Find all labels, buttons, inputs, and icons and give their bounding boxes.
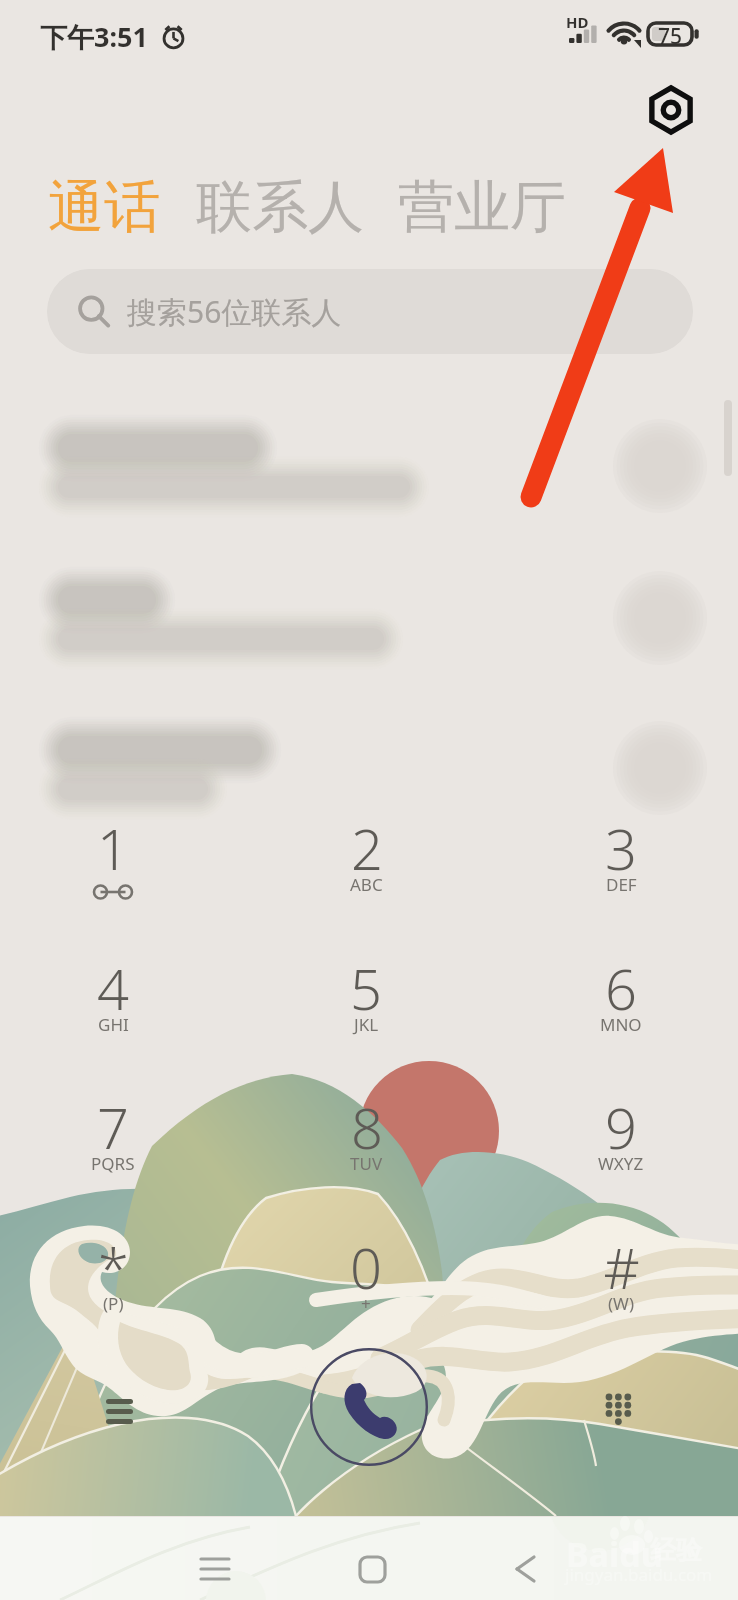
button[interactable]: 6	[559, 950, 683, 1074]
staticText: 6	[605, 950, 637, 1026]
button[interactable]: Settings	[641, 80, 701, 140]
button[interactable]: 1	[51, 810, 175, 934]
staticText: ABC	[350, 873, 383, 896]
staticText: MNO	[600, 1013, 642, 1036]
button[interactable]: 2	[304, 810, 428, 934]
button[interactable]: 8	[304, 1089, 428, 1213]
staticText: 1	[97, 810, 129, 886]
staticText: 5	[350, 950, 382, 1026]
button[interactable]: Recents	[185, 1539, 245, 1599]
button[interactable]: Call log	[87, 1379, 151, 1443]
staticText: 4	[97, 950, 129, 1026]
staticText: +	[361, 1292, 371, 1315]
button[interactable]: *	[51, 1229, 175, 1353]
staticText: 7	[97, 1089, 129, 1165]
button[interactable]: Dialpad	[586, 1379, 650, 1443]
button[interactable]: Call	[310, 1348, 428, 1466]
staticText: *	[98, 1229, 129, 1305]
staticText: TUV	[350, 1152, 383, 1175]
staticText: 8	[351, 1089, 383, 1165]
staticText: 联系人	[196, 172, 364, 243]
staticText: 通话	[48, 172, 160, 243]
button[interactable]: 4	[51, 950, 175, 1074]
button[interactable]: 7	[51, 1089, 175, 1213]
button[interactable]: 联系人	[196, 172, 364, 243]
staticText: 9	[605, 1089, 637, 1165]
staticText: (W)	[608, 1292, 635, 1315]
button[interactable]: 5	[304, 950, 428, 1074]
button[interactable]: Home	[342, 1539, 402, 1599]
button[interactable]	[0, 572, 738, 698]
staticText: GHI	[98, 1013, 129, 1036]
staticText: JKL	[354, 1013, 379, 1036]
staticText: DEF	[606, 873, 637, 896]
staticText: WXYZ	[598, 1152, 644, 1175]
button[interactable]: #	[559, 1229, 683, 1353]
button[interactable]: 0	[304, 1229, 428, 1353]
button[interactable]: 9	[559, 1089, 683, 1213]
staticText: #	[603, 1229, 640, 1305]
staticText: 下午3:51	[40, 18, 148, 55]
button[interactable]	[0, 722, 738, 848]
staticText: 营业厅	[398, 172, 566, 243]
button[interactable]: 通话	[48, 172, 160, 243]
staticText: Baidu	[566, 1531, 663, 1577]
staticText: (P)	[103, 1292, 124, 1315]
button[interactable]: 搜索56位联系人	[47, 269, 693, 354]
staticText: PQRS	[91, 1152, 135, 1175]
button[interactable]: Back	[495, 1539, 555, 1599]
staticText: 75	[658, 22, 683, 51]
staticText: 2	[351, 810, 383, 886]
button[interactable]: 营业厅	[398, 172, 566, 243]
staticText: HD	[566, 12, 589, 32]
staticText: 搜索56位联系人	[127, 291, 342, 332]
staticText: 0	[350, 1229, 382, 1305]
button[interactable]	[0, 420, 738, 546]
button[interactable]: 3	[559, 810, 683, 934]
staticText: 3	[605, 810, 637, 886]
